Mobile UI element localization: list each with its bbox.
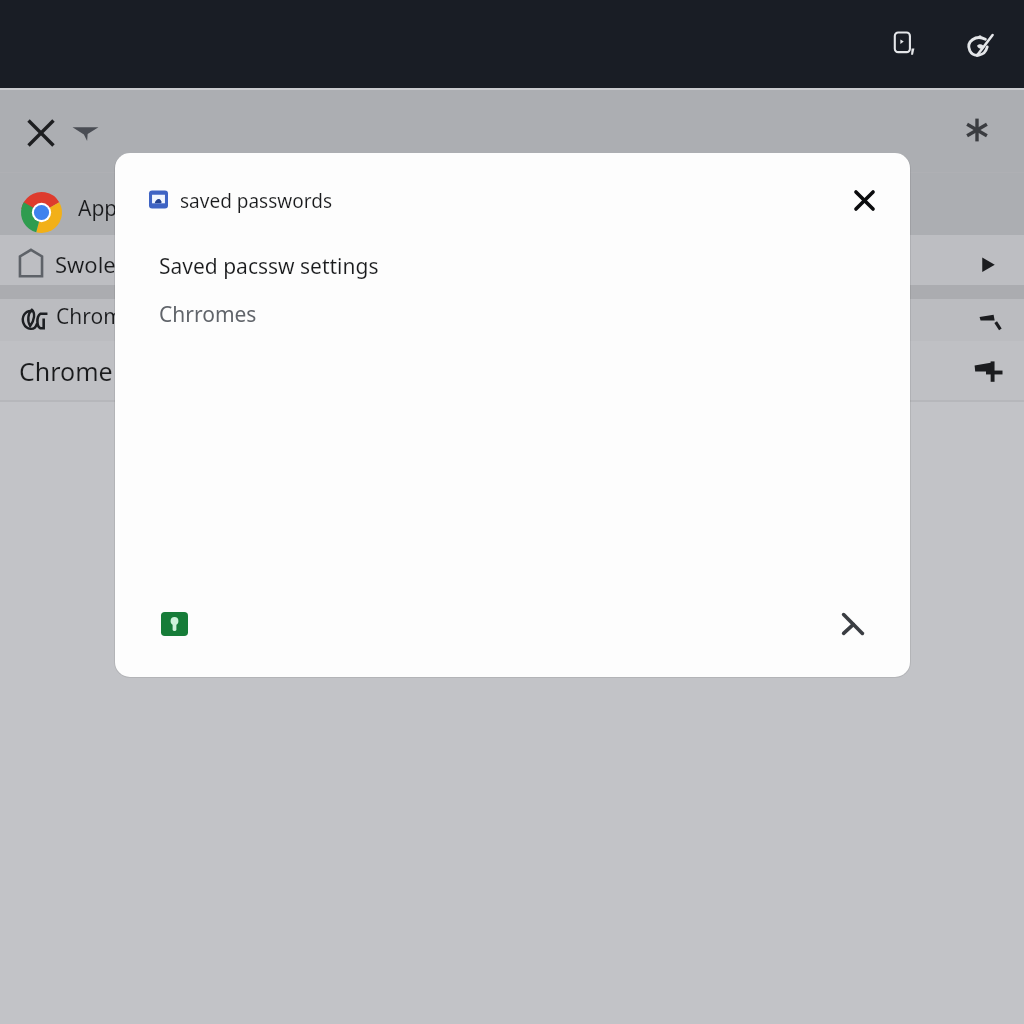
staticText: Chrome	[56, 302, 135, 331]
button[interactable]: Notifications silenced	[958, 22, 1002, 66]
staticText: Saved pacssw settings	[159, 252, 379, 281]
staticText: Chrome passwords	[19, 354, 245, 388]
staticText: saved passwords	[180, 188, 332, 214]
button[interactable]: Close dialog	[838, 174, 890, 226]
button[interactable]: Chrome	[0, 299, 1024, 341]
staticText: Swole	[55, 249, 116, 279]
button[interactable]: More options	[952, 105, 1002, 155]
button[interactable]: Chrome passwords	[0, 341, 1024, 400]
button[interactable]: Dismiss	[827, 598, 879, 650]
button[interactable]: Password manager	[152, 602, 196, 646]
button[interactable]: Screen cast	[884, 22, 928, 66]
button[interactable]: Swole	[0, 235, 1024, 285]
staticText: Apps	[78, 194, 128, 223]
button[interactable]: Filter	[60, 109, 110, 159]
staticText: Chrromes	[159, 300, 257, 329]
button[interactable]: Close	[16, 108, 66, 158]
button[interactable]: Apps	[0, 173, 1024, 235]
